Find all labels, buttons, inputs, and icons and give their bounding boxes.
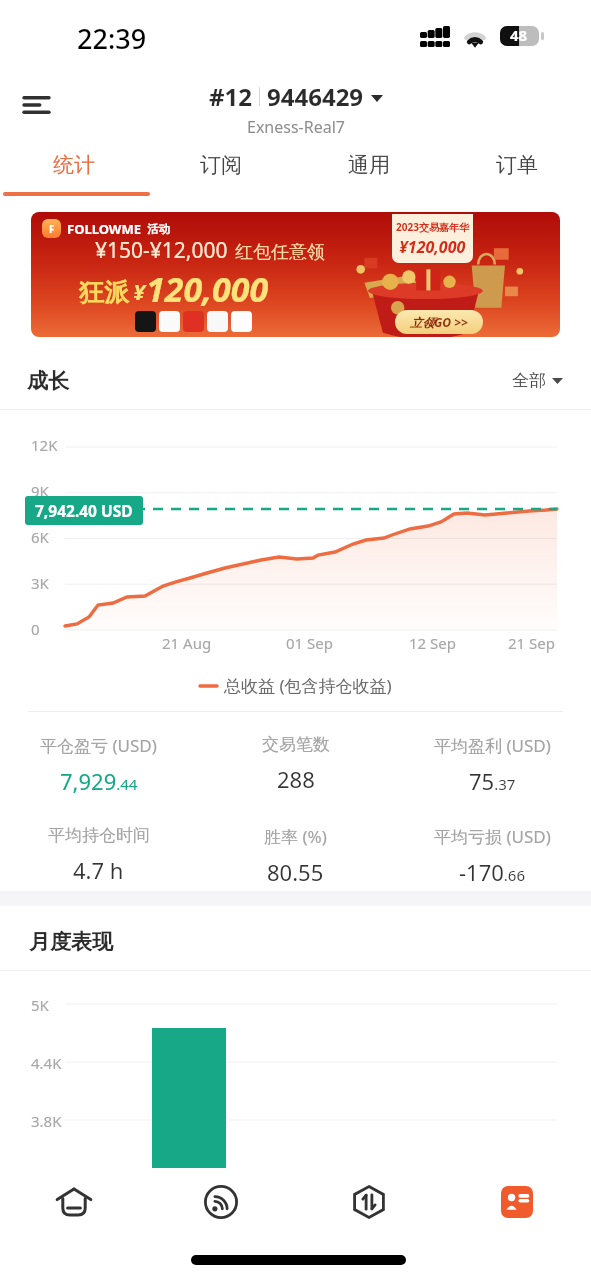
staticText: 80.55	[267, 857, 324, 887]
staticText: 2023交易嘉年华	[396, 220, 469, 234]
staticText: 订阅	[200, 152, 242, 178]
staticText: F	[49, 222, 55, 236]
staticText: 22:39	[77, 20, 147, 57]
staticText: 288	[277, 764, 315, 794]
staticText: 01 Sep	[286, 633, 333, 653]
button[interactable]: 立领GO >>	[395, 310, 483, 334]
staticText: 120,000	[146, 266, 269, 312]
staticText: 12K	[31, 435, 58, 455]
staticText: 9446429	[267, 80, 364, 113]
staticText: 12 Sep	[409, 633, 456, 653]
button[interactable]: Menu	[8, 77, 64, 133]
staticText: 胜率 (%)	[264, 825, 327, 848]
staticText: 成长	[27, 368, 69, 394]
staticText: 立领GO >>	[410, 314, 468, 330]
staticText: Exness-Real7	[247, 116, 345, 138]
button[interactable]: 全部	[512, 370, 563, 391]
staticText: 月度表现	[29, 929, 113, 955]
staticText: 平仓盈亏 (USD)	[40, 734, 157, 757]
staticText: 21 Sep	[508, 633, 555, 653]
button[interactable]: Trade	[295, 1168, 443, 1246]
button[interactable]: 订单	[443, 143, 591, 196]
staticText: 7,942.40 USD	[35, 500, 133, 521]
staticText: #12	[209, 80, 252, 113]
staticText: 全部	[512, 370, 546, 391]
staticText: 3.8K	[31, 1111, 62, 1131]
staticText: 订单	[496, 152, 538, 178]
staticText: 48	[510, 26, 528, 45]
staticText: 0	[31, 619, 40, 639]
button[interactable]: 通用	[295, 143, 443, 196]
staticText: ¥150-¥12,000	[95, 236, 228, 265]
staticText: ¥120,000	[399, 236, 466, 258]
staticText: 5K	[31, 995, 49, 1015]
staticText: 6K	[31, 527, 49, 547]
button[interactable]: 统计	[0, 143, 147, 196]
staticText: 21 Aug	[162, 633, 212, 653]
staticText: 3K	[31, 573, 49, 593]
staticText: 9K	[31, 481, 49, 501]
staticText: -170.66	[459, 857, 526, 887]
staticText: 平均盈利 (USD)	[434, 734, 551, 757]
button[interactable]: Signals	[147, 1168, 295, 1246]
staticText: 总收益 (包含持仓收益)	[224, 674, 392, 697]
staticText: 7,929.44	[60, 766, 138, 796]
staticText: 4.4K	[31, 1053, 62, 1073]
staticText: 通用	[348, 152, 390, 178]
button[interactable]: F	[31, 212, 560, 337]
staticText: 狂派	[79, 277, 129, 308]
staticText: 红包任意领	[235, 241, 325, 264]
button[interactable]: #12	[209, 80, 383, 138]
staticText: 平均持仓时间	[48, 825, 150, 846]
staticText: 平均亏损 (USD)	[434, 825, 551, 848]
staticText: 活动	[147, 222, 170, 236]
button[interactable]: Home	[0, 1168, 147, 1246]
staticText: 统计	[53, 152, 95, 178]
button[interactable]: 订阅	[147, 143, 295, 196]
staticText: 交易笔数	[262, 734, 330, 755]
staticText: FOLLOWME	[67, 220, 141, 238]
staticText: 75.37	[469, 766, 516, 796]
staticText: ¥	[133, 276, 146, 306]
staticText: 4.7 h	[73, 855, 124, 885]
button[interactable]: Profile	[443, 1168, 591, 1246]
